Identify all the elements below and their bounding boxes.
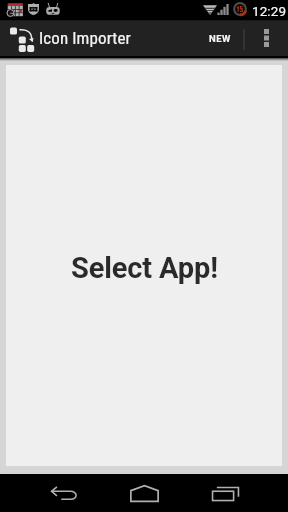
button[interactable]: More options bbox=[245, 20, 288, 56]
button[interactable]: Recents bbox=[185, 474, 265, 512]
button[interactable]: Home bbox=[104, 474, 184, 512]
button[interactable]: Icon Importer bbox=[0, 20, 139, 56]
staticText: 12:29 bbox=[252, 3, 287, 19]
button[interactable]: Back bbox=[24, 474, 104, 512]
staticText: Select App! bbox=[71, 251, 218, 285]
staticText: Icon Importer bbox=[39, 28, 131, 48]
button[interactable]: NEW bbox=[200, 20, 243, 56]
staticText: NEW bbox=[209, 33, 231, 44]
